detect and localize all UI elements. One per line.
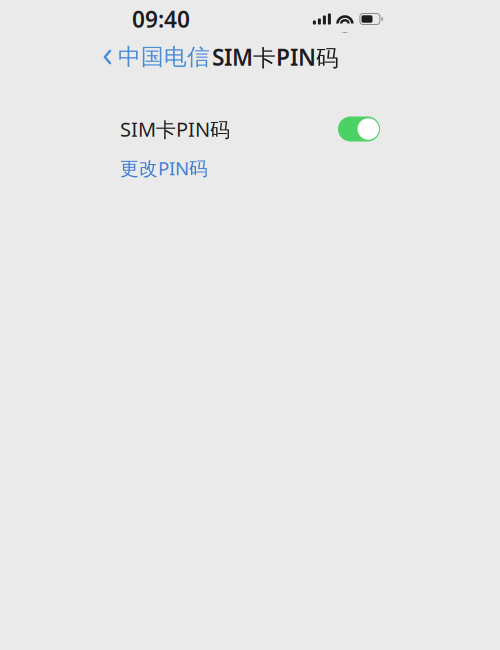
button[interactable]: SIM 卡 PIN 码开关	[338, 116, 380, 141]
button[interactable]: 更改PIN码	[0, 153, 500, 183]
button[interactable]: 中国电信	[0, 35, 222, 79]
staticText: SIM卡PIN码	[212, 42, 339, 72]
staticText: SIM卡PIN码	[120, 116, 230, 142]
staticText: 更改PIN码	[120, 156, 208, 180]
staticText: 09:40	[132, 4, 190, 34]
staticText: 中国电信	[118, 43, 210, 71]
